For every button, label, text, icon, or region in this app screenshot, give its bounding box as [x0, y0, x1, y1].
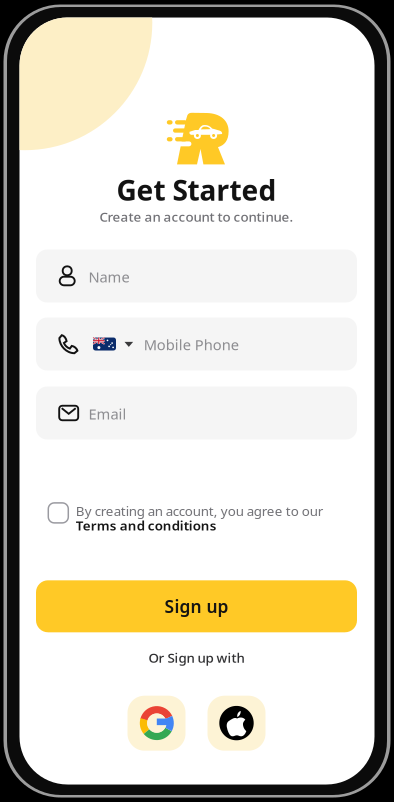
staticText: Email — [88, 404, 126, 424]
button[interactable]: By creating an account, you agree to our — [48, 502, 308, 536]
button[interactable]: Sign up with Google — [127, 696, 185, 751]
staticText: Sign up — [164, 595, 228, 618]
staticText: Name — [88, 267, 129, 287]
staticText: Or Sign up with — [148, 649, 244, 666]
staticText: Create an account to continue. — [99, 208, 293, 225]
staticText: Get Started — [116, 171, 276, 209]
button[interactable]: Email — [36, 386, 357, 439]
staticText: Terms and conditions — [76, 516, 217, 534]
button[interactable]: Sign up with Apple — [207, 696, 265, 751]
button[interactable]: Mobile Phone — [36, 317, 357, 370]
staticText: By creating an account, you agree to our — [76, 502, 324, 520]
button[interactable]: Name — [36, 249, 357, 302]
button[interactable]: Sign up — [36, 580, 357, 632]
staticText: Mobile Phone — [144, 335, 239, 354]
